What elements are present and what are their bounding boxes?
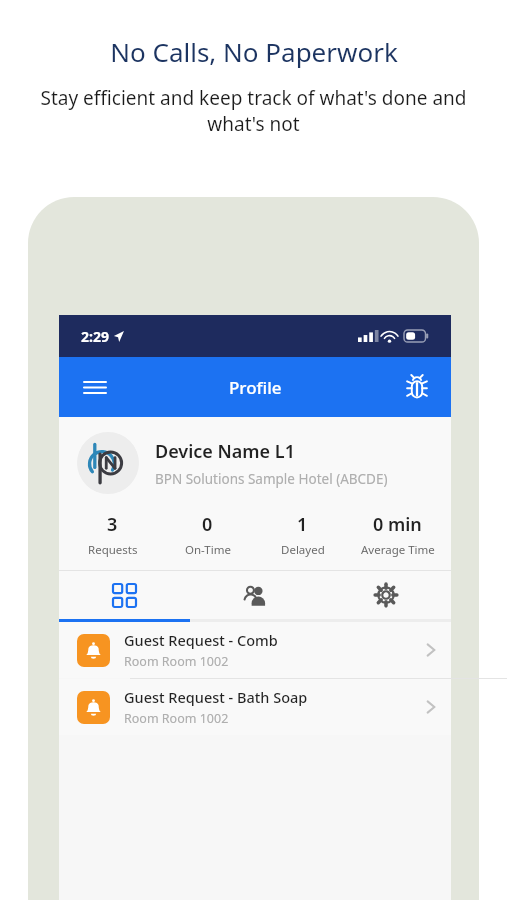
button[interactable]: Report a bug (395, 365, 439, 409)
staticText: Device Name L1 (155, 439, 295, 464)
staticText: Stay efficient and keep track of what's … (22, 85, 485, 137)
button[interactable]: Guest Request - Comb (59, 622, 451, 678)
staticText: Room Room 1002 (124, 710, 229, 727)
staticText: Guest Request - Comb (124, 630, 278, 650)
staticText: Guest Request - Bath Soap (124, 687, 308, 707)
staticText: Room Room 1002 (124, 653, 229, 670)
button[interactable]: Guest Request - Bath Soap (59, 679, 451, 735)
button[interactable]: People (189, 571, 320, 619)
button[interactable]: Menu (73, 365, 117, 409)
staticText: Delayed (281, 542, 325, 558)
staticText: BPN Solutions Sample Hotel (ABCDE) (155, 470, 388, 488)
staticText: 3 (107, 512, 118, 537)
staticText: No Calls, No Paperwork (110, 34, 398, 69)
button[interactable]: Requests (59, 571, 189, 619)
staticText: 1 (297, 512, 308, 537)
button[interactable]: Settings (320, 571, 451, 619)
staticText: 0 (202, 512, 213, 537)
staticText: On-Time (185, 542, 231, 558)
staticText: Requests (88, 542, 138, 558)
staticText: Average Time (361, 542, 435, 558)
staticText: 0 min (373, 512, 422, 537)
staticText: 2:29 (81, 327, 109, 346)
staticText: Profile (229, 376, 282, 399)
